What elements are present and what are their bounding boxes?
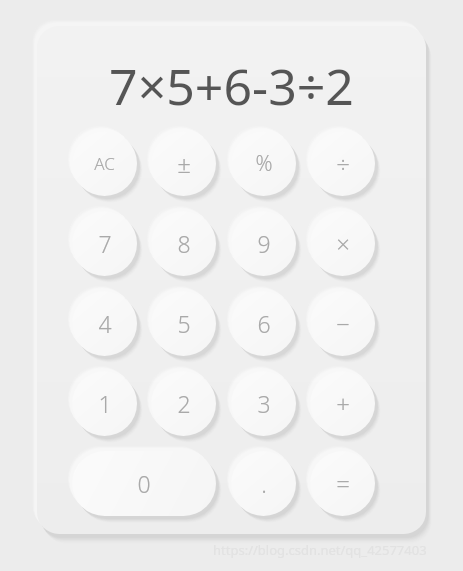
staticText: 7×5+6-3÷2	[109, 52, 354, 114]
button[interactable]: Minus	[310, 291, 375, 356]
staticText: 8	[177, 228, 191, 259]
staticText: .	[261, 468, 267, 499]
button[interactable]: 6	[231, 291, 296, 356]
staticText: 9	[257, 228, 271, 259]
staticText: 1	[98, 388, 112, 419]
button[interactable]: Plus minus	[151, 131, 216, 196]
staticText: 7	[98, 228, 112, 259]
staticText: 6	[257, 308, 271, 339]
button[interactable]: Percent	[231, 131, 296, 196]
staticText: 0	[137, 468, 151, 499]
button[interactable]: 7	[72, 211, 137, 276]
button[interactable]: Equals	[310, 451, 375, 516]
button[interactable]: 4	[72, 291, 137, 356]
button[interactable]: Divide	[310, 131, 375, 196]
button[interactable]: Plus	[310, 371, 375, 436]
staticText: =	[336, 467, 350, 500]
staticText: AC	[94, 152, 115, 175]
button[interactable]: 0	[72, 451, 216, 516]
staticText: 4	[98, 308, 112, 339]
button[interactable]: 3	[231, 371, 296, 436]
staticText: −	[336, 307, 350, 340]
button[interactable]: Decimal point	[231, 451, 296, 516]
button[interactable]: Multiply	[310, 211, 375, 276]
staticText: ×	[336, 227, 350, 260]
button[interactable]: 2	[151, 371, 216, 436]
button[interactable]: 1	[72, 371, 137, 436]
button[interactable]: AC	[72, 131, 137, 196]
staticText: ÷	[336, 147, 350, 180]
staticText: https://blog.csdn.net/qq_42577403	[213, 541, 427, 559]
staticText: %	[255, 149, 273, 178]
button[interactable]: 9	[231, 211, 296, 276]
staticText: 2	[177, 388, 191, 419]
button[interactable]: 5	[151, 291, 216, 356]
staticText: 3	[257, 388, 271, 419]
staticText: +	[336, 387, 350, 420]
staticText: ±	[177, 147, 191, 180]
button[interactable]: 8	[151, 211, 216, 276]
staticText: 5	[177, 308, 191, 339]
